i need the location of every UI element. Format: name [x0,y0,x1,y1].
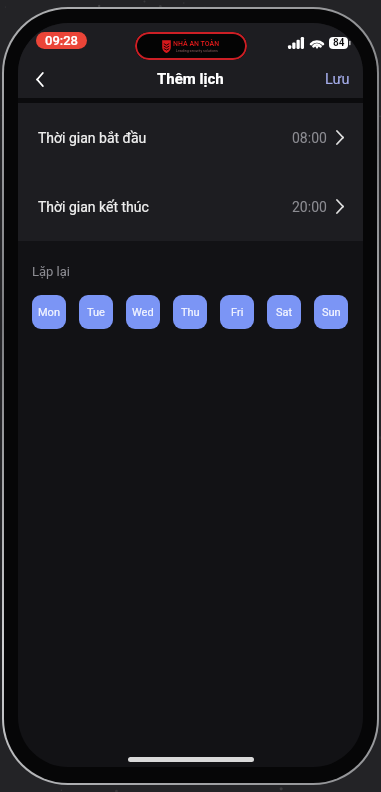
staticText: NHÀ AN TOÀN [173,40,220,48]
staticText: Leading security solutions [176,49,218,53]
staticText: Thời gian kết thúc [38,199,149,215]
button[interactable]: Mon [32,295,66,329]
staticText: Thêm lịch [157,70,224,88]
button[interactable]: Thời gian bắt đầu [18,103,363,172]
button[interactable]: Sun [314,295,348,329]
staticText: 09:28 [45,33,78,48]
staticText: Thu [181,306,200,319]
staticText: Sun [322,306,341,319]
button[interactable]: Thu [173,295,207,329]
staticText: Sat [276,306,293,319]
staticText: 84 [333,37,345,49]
button[interactable]: Sat [267,295,301,329]
button[interactable]: Back [23,62,57,96]
staticText: Thời gian bắt đầu [38,130,147,146]
button[interactable]: Wed [126,295,160,329]
staticText: Mon [38,306,60,319]
button[interactable]: Thời gian kết thúc [18,172,363,241]
staticText: 20:00 [292,199,327,215]
staticText: Tue [87,306,105,319]
button[interactable]: Tue [79,295,113,329]
staticText: Lặp lại [32,264,70,279]
button[interactable]: Fri [220,295,254,329]
staticText: Fri [231,306,244,319]
staticText: Wed [132,306,154,319]
staticText: 08:00 [292,130,327,146]
button[interactable]: Lưu [311,63,363,96]
staticText: Lưu [325,71,350,88]
